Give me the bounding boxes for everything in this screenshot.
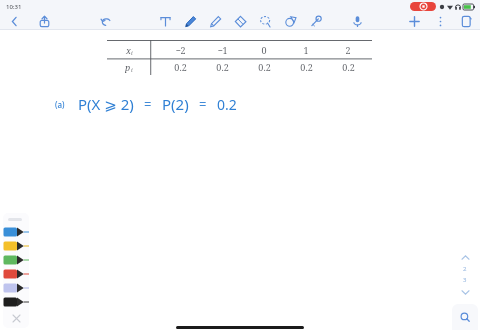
button[interactable]: Pages xyxy=(458,13,474,29)
button[interactable]: Text tool xyxy=(157,13,173,29)
staticText: i xyxy=(131,66,133,73)
button[interactable]: Shapes xyxy=(282,13,298,29)
staticText: 0.2 xyxy=(342,61,355,73)
staticText: 10:31 xyxy=(6,3,22,11)
staticText: 0.2 xyxy=(300,61,313,73)
button[interactable]: Eraser xyxy=(232,13,248,29)
button[interactable]: Record audio xyxy=(349,13,365,29)
staticText: 1 xyxy=(303,44,309,56)
staticText: 0.2 xyxy=(258,61,271,73)
staticText: x xyxy=(126,44,131,56)
staticText: i xyxy=(131,49,133,56)
staticText: 0.2 xyxy=(217,95,237,114)
button[interactable]: Pen colour xyxy=(3,239,29,253)
button[interactable]: Share xyxy=(36,13,52,29)
staticText: = xyxy=(144,95,152,113)
button[interactable]: Back xyxy=(6,13,22,29)
button[interactable]: Pen colour xyxy=(3,253,29,267)
staticText: = xyxy=(199,95,207,113)
button[interactable]: Previous page xyxy=(457,249,473,265)
button[interactable]: Close palette xyxy=(3,312,29,324)
staticText: 2 xyxy=(463,265,467,273)
button[interactable]: Pen colour xyxy=(3,281,29,295)
staticText: 3 xyxy=(463,276,467,284)
staticText: (a) xyxy=(55,99,65,110)
button[interactable]: Pen colour xyxy=(3,295,29,309)
button[interactable]: Next page xyxy=(457,284,473,300)
button[interactable]: Search xyxy=(452,304,478,330)
staticText: P(2) xyxy=(162,94,189,114)
staticText: −1 xyxy=(217,44,228,56)
button[interactable]: Highlighter xyxy=(207,13,223,29)
button[interactable]: Pen colour xyxy=(3,225,29,239)
staticText: −2 xyxy=(175,44,186,56)
staticText: 0 xyxy=(261,44,267,56)
button[interactable]: Lasso xyxy=(257,13,273,29)
staticText: 2 xyxy=(345,44,351,56)
button[interactable]: Pen colour xyxy=(3,267,29,281)
staticText: P(X ⩾ 2) xyxy=(78,94,134,114)
button[interactable]: Pen tool xyxy=(182,13,198,29)
staticText: 0.2 xyxy=(174,61,187,73)
staticText: p xyxy=(125,61,131,73)
staticText: 0.2 xyxy=(216,61,229,73)
button[interactable]: Undo xyxy=(98,13,114,29)
button[interactable]: Add xyxy=(406,13,422,29)
button[interactable]: More options xyxy=(432,13,448,29)
button[interactable]: Magic pen xyxy=(307,13,323,29)
